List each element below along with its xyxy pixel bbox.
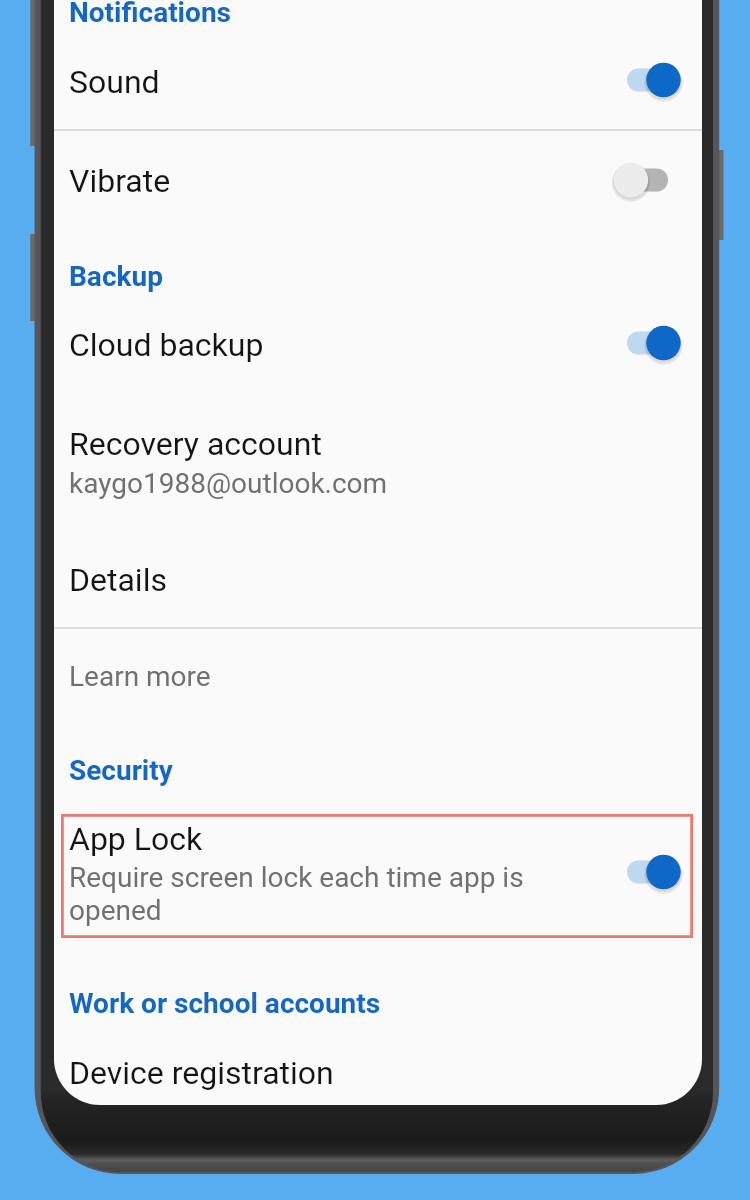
staticText: Cloud backup (69, 326, 264, 364)
staticText: Learn more (69, 660, 211, 693)
button[interactable]: Vibrate (54, 131, 702, 233)
staticText: Work or school accounts (69, 987, 381, 1020)
button[interactable]: Device registration (54, 1038, 702, 1105)
button[interactable]: App Lock (61, 814, 693, 938)
staticText: Details (69, 561, 167, 599)
staticText: Recovery account (69, 425, 322, 463)
staticText: Device registration (69, 1054, 334, 1092)
staticText: Notifications (69, 0, 231, 29)
staticText: Security (69, 754, 173, 787)
button[interactable]: Cloud backup (54, 300, 702, 395)
staticText: kaygo1988@outlook.com (69, 467, 388, 500)
staticText: opened (69, 894, 162, 927)
button[interactable]: Details (54, 530, 702, 627)
button[interactable]: Learn more (54, 629, 702, 725)
button[interactable]: Switch on (610, 59, 682, 101)
button[interactable]: Switch on (610, 851, 682, 893)
staticText: Vibrate (69, 162, 171, 200)
button[interactable]: Sound (54, 0, 702, 129)
staticText: Sound (69, 63, 160, 101)
staticText: App Lock (69, 820, 203, 858)
staticText: Backup (69, 260, 163, 293)
button[interactable]: Switch on (610, 322, 682, 364)
button[interactable]: Recovery account (54, 400, 702, 525)
button[interactable]: Switch off (610, 159, 682, 201)
staticText: Require screen lock each time app is (69, 861, 524, 894)
